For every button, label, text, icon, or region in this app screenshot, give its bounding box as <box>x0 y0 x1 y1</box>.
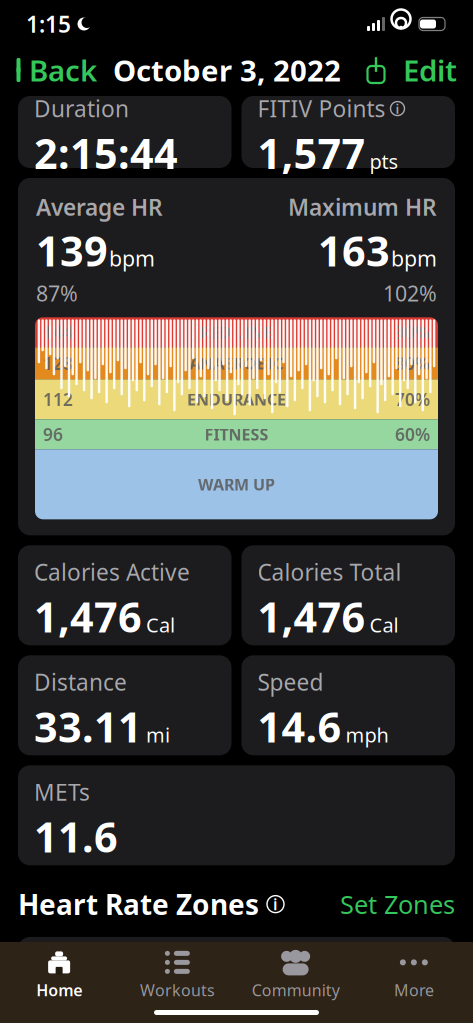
staticText: Calories Total <box>257 557 401 587</box>
staticText: ANAEROBIC <box>189 353 283 374</box>
staticText: Set Zones <box>340 887 455 921</box>
staticText: ENDURANCE <box>187 389 286 410</box>
staticText: Community <box>252 979 340 1001</box>
staticText: 163 <box>318 223 390 278</box>
staticText: Average HR <box>36 192 163 222</box>
staticText: 80% <box>395 352 430 375</box>
button[interactable]: Community <box>236 941 355 1001</box>
button[interactable]: Home <box>0 941 118 1001</box>
staticText: FITNESS <box>204 424 268 445</box>
staticText: Duration <box>34 93 129 124</box>
staticText: 144+bpm <box>128 951 229 981</box>
staticText: 96 <box>43 423 63 446</box>
staticText: 1,577 <box>257 126 365 180</box>
staticText: 1,476 <box>34 589 142 644</box>
staticText: i <box>273 893 278 915</box>
button[interactable]: Edit <box>395 44 473 95</box>
staticText: pts <box>369 148 398 175</box>
staticText: 1:15 <box>26 9 71 39</box>
staticText: 11.6 <box>34 809 118 864</box>
staticText: Speed <box>257 667 323 697</box>
staticText: i <box>395 100 399 117</box>
staticText: 33% <box>385 988 439 1023</box>
staticText: 14.6 <box>257 699 341 754</box>
button[interactable]: Set Zones <box>340 883 455 925</box>
staticText: 139 <box>36 223 108 278</box>
button[interactable]: Back <box>0 44 97 95</box>
staticText: bpm <box>109 244 155 272</box>
staticText: Zone 5 <box>34 947 121 982</box>
staticText: Edit <box>403 50 457 89</box>
staticText: METs <box>34 777 90 807</box>
staticText: 60% <box>395 423 430 446</box>
staticText: October 3, 2022 <box>113 50 341 89</box>
staticText: Workouts <box>140 979 215 1001</box>
staticText: mph <box>345 721 388 748</box>
staticText: mi <box>146 721 170 748</box>
staticText: 128 <box>43 352 73 375</box>
staticText: 1,476 <box>257 589 365 644</box>
staticText: Home <box>36 979 82 1001</box>
button[interactable]: Zone 5 <box>18 937 455 1023</box>
staticText: 102% <box>383 279 437 307</box>
staticText: Heart Rate Zones <box>18 885 259 923</box>
staticText: Calories Active <box>34 557 190 587</box>
staticText: Cal <box>146 611 175 638</box>
staticText: FITIV Points <box>257 93 385 124</box>
staticText: WARM UP <box>198 474 275 495</box>
staticText: 144 <box>43 321 73 344</box>
staticText: 2:15:44 <box>34 126 178 180</box>
staticText: 70% <box>395 388 430 411</box>
staticText: 87% <box>36 279 78 307</box>
staticText: Back <box>29 50 97 89</box>
staticText: 45:35 <box>372 947 439 982</box>
button[interactable]: More <box>355 941 473 1001</box>
staticText: RED LINE <box>200 322 272 343</box>
staticText: Distance <box>34 667 127 697</box>
button[interactable]: Share <box>357 51 395 89</box>
staticText: Maximum HR <box>288 192 437 222</box>
staticText: More <box>394 979 434 1001</box>
staticText: 33.11 <box>34 699 142 754</box>
staticText: Cal <box>369 611 398 638</box>
staticText: 112 <box>43 388 73 411</box>
button[interactable]: Workouts <box>118 941 236 1001</box>
staticText: bpm <box>391 244 437 272</box>
staticText: 90% <box>395 321 430 344</box>
